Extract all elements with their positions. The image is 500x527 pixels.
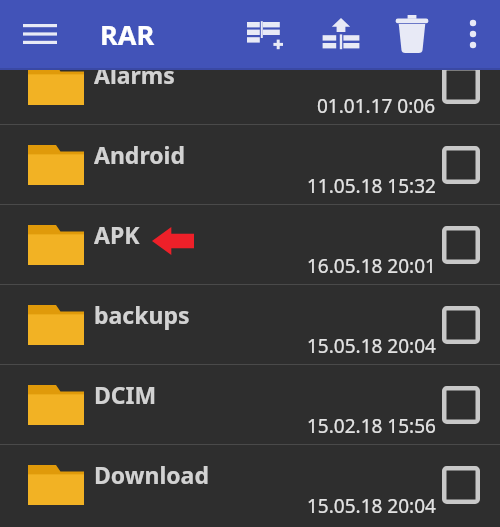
- staticText: 15.05.18 20:04: [307, 493, 436, 519]
- button[interactable]: Add to archive: [230, 0, 304, 68]
- staticText: RAR: [100, 16, 155, 53]
- button[interactable]: Extract archive: [304, 0, 378, 68]
- button[interactable]: Delete: [378, 0, 446, 68]
- staticText: Download: [94, 459, 209, 490]
- button[interactable]: Android: [0, 125, 500, 205]
- button[interactable]: More options: [446, 0, 500, 68]
- staticText: 16.05.18 20:01: [307, 253, 436, 279]
- staticText: 11.05.18 15:32: [307, 173, 436, 199]
- staticText: Alarms: [94, 70, 175, 90]
- staticText: APK: [94, 219, 140, 250]
- button[interactable]: Open navigation drawer: [0, 0, 80, 68]
- button[interactable]: Select DCIM: [442, 386, 480, 424]
- staticText: 15.05.18 20:04: [307, 333, 436, 359]
- button[interactable]: Select Alarms: [442, 70, 480, 104]
- button[interactable]: Select APK: [442, 226, 480, 264]
- staticText: DCIM: [94, 379, 157, 410]
- staticText: 01.01.17 0:06: [317, 93, 436, 119]
- staticText: 15.02.18 15:56: [307, 413, 436, 439]
- button[interactable]: Select Android: [442, 146, 480, 184]
- button[interactable]: APK: [0, 205, 500, 285]
- button[interactable]: Select Download: [442, 466, 480, 504]
- button[interactable]: Select backups: [442, 306, 480, 344]
- staticText: backups: [94, 299, 190, 330]
- button[interactable]: DCIM: [0, 365, 500, 445]
- button[interactable]: Download: [0, 445, 500, 527]
- button[interactable]: Alarms: [0, 70, 500, 125]
- button[interactable]: backups: [0, 285, 500, 365]
- staticText: Android: [94, 139, 186, 170]
